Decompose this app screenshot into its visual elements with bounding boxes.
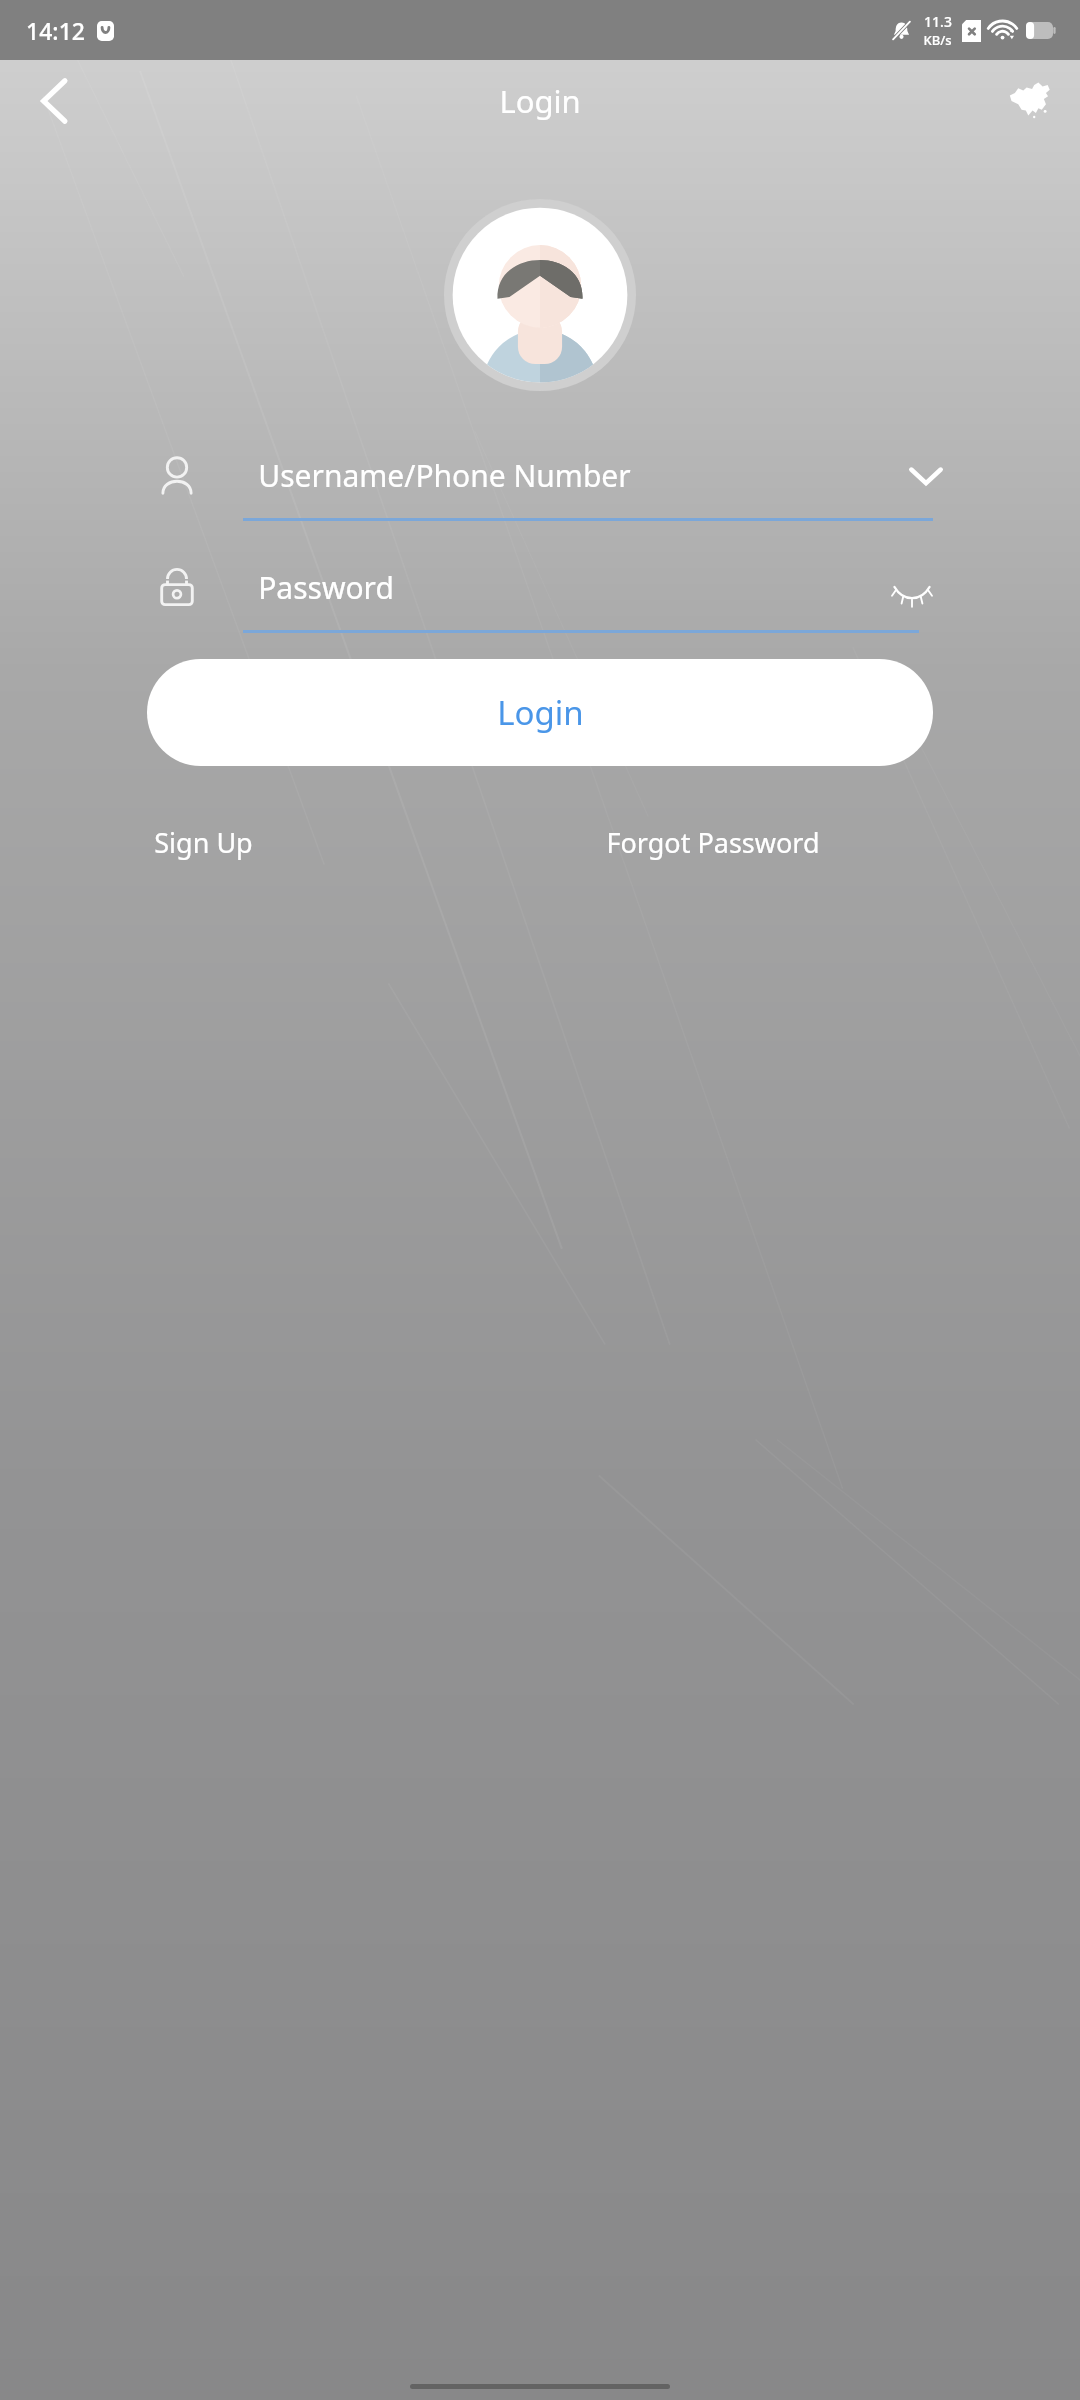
button[interactable]: Password <box>0 553 1080 633</box>
staticText: Password <box>258 567 394 608</box>
button[interactable]: Back <box>22 69 86 133</box>
button[interactable]: Forgot Password <box>592 812 834 873</box>
button[interactable]: Login <box>147 659 933 766</box>
button[interactable]: Show accounts <box>902 452 950 500</box>
staticText: KB/s <box>923 31 952 49</box>
staticText: 11.3 <box>924 12 952 31</box>
button[interactable]: Show password <box>886 565 938 617</box>
button[interactable]: Region <box>998 69 1062 133</box>
staticText: Username/Phone Number <box>258 455 631 496</box>
staticText: Sign Up <box>154 824 253 861</box>
button[interactable]: Username/Phone Number <box>0 441 1080 521</box>
staticText: Forgot Password <box>606 824 820 861</box>
staticText: 14:12 <box>26 15 85 46</box>
staticText: Login <box>499 80 581 122</box>
button[interactable]: Sign Up <box>140 812 267 873</box>
staticText: Login <box>497 690 584 735</box>
